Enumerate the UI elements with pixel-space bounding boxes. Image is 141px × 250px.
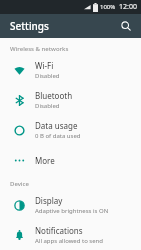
staticText: Notifications [35,225,83,236]
button[interactable]: Search [117,17,135,35]
staticText: More [35,155,55,166]
staticText: Device [10,180,29,188]
button[interactable]: Data usage [0,115,141,145]
staticText: Bluetooth [35,90,73,101]
staticText: 0 B of data used [35,132,81,140]
staticText: Disabled [35,72,60,80]
staticText: Adaptive brightness is ON [35,207,109,215]
staticText: 12:00 [119,2,137,12]
staticText: Wireless & networks [10,45,69,53]
button[interactable]: Notifications [0,220,141,250]
staticText: Disabled [35,102,60,110]
button[interactable]: More [0,145,141,175]
staticText: Settings [10,19,49,33]
staticText: All apps allowed to send [35,237,104,245]
staticText: Data usage [35,120,78,131]
button[interactable]: Bluetooth [0,85,141,115]
button[interactable]: Wi-Fi [0,55,141,85]
staticText: Wi-Fi [35,60,54,71]
staticText: 100% [100,3,116,11]
button[interactable]: Display [0,190,141,220]
staticText: Display [35,195,63,206]
